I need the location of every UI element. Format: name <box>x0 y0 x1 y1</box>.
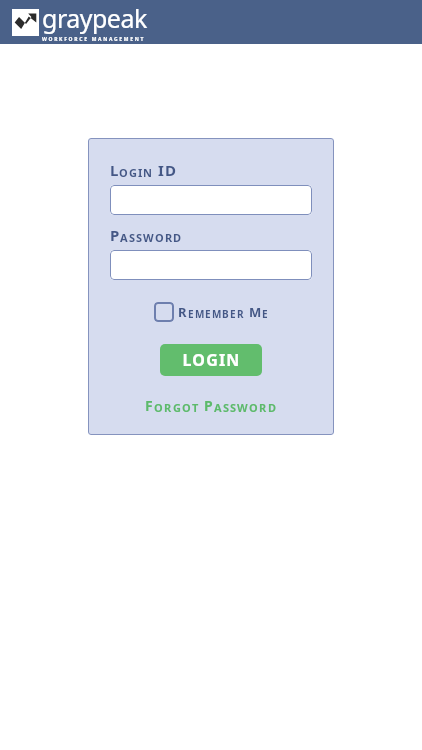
staticText: WORKFORCE MANAGEMENT <box>42 36 146 43</box>
staticText: S <box>129 230 136 245</box>
staticText: R <box>164 400 173 415</box>
staticText: A <box>214 400 223 415</box>
staticText: L <box>110 160 119 180</box>
staticText: S <box>136 230 143 245</box>
staticText: E <box>262 307 269 321</box>
button[interactable]: R <box>154 302 269 322</box>
staticText: O <box>154 400 164 415</box>
staticText: S <box>223 400 230 415</box>
staticText: W <box>143 230 155 245</box>
staticText: G <box>173 400 182 415</box>
staticText: D <box>173 230 182 245</box>
staticText: M <box>249 303 262 321</box>
staticText: G <box>129 165 138 180</box>
staticText: E <box>188 307 195 321</box>
staticText: E <box>230 307 237 321</box>
staticText: O <box>155 230 165 245</box>
button[interactable]: LOGIN <box>160 344 262 376</box>
button[interactable] <box>110 250 312 280</box>
staticText: W <box>237 400 249 415</box>
staticText: R <box>237 307 245 321</box>
staticText: P <box>110 225 120 245</box>
staticText: R <box>178 303 188 321</box>
staticText: P <box>204 396 214 415</box>
staticText: M <box>195 307 205 321</box>
staticText: T <box>192 400 200 415</box>
staticText: E <box>205 307 212 321</box>
staticText: A <box>120 230 129 245</box>
staticText: R <box>165 230 173 245</box>
staticText: LOGIN <box>182 349 241 371</box>
staticText: O <box>182 400 192 415</box>
staticText: B <box>222 307 230 321</box>
button[interactable]: F <box>145 396 277 415</box>
staticText: I <box>158 160 165 180</box>
staticText: O <box>119 165 129 180</box>
staticText: D <box>268 400 277 415</box>
staticText: D <box>165 160 177 180</box>
staticText: F <box>145 396 154 415</box>
staticText: graypeak <box>42 1 147 35</box>
staticText: M <box>212 307 222 321</box>
staticText: I <box>138 165 143 180</box>
staticText: R <box>259 400 268 415</box>
staticText: O <box>249 400 259 415</box>
staticText: N <box>143 165 153 180</box>
button[interactable] <box>110 185 312 215</box>
staticText: S <box>230 400 237 415</box>
